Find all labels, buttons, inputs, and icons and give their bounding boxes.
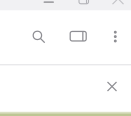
button[interactable]: More bbox=[100, 22, 130, 52]
button[interactable]: Search bbox=[24, 22, 54, 52]
button[interactable]: Tabs bbox=[63, 21, 93, 51]
button[interactable]: Close bbox=[99, 73, 125, 99]
